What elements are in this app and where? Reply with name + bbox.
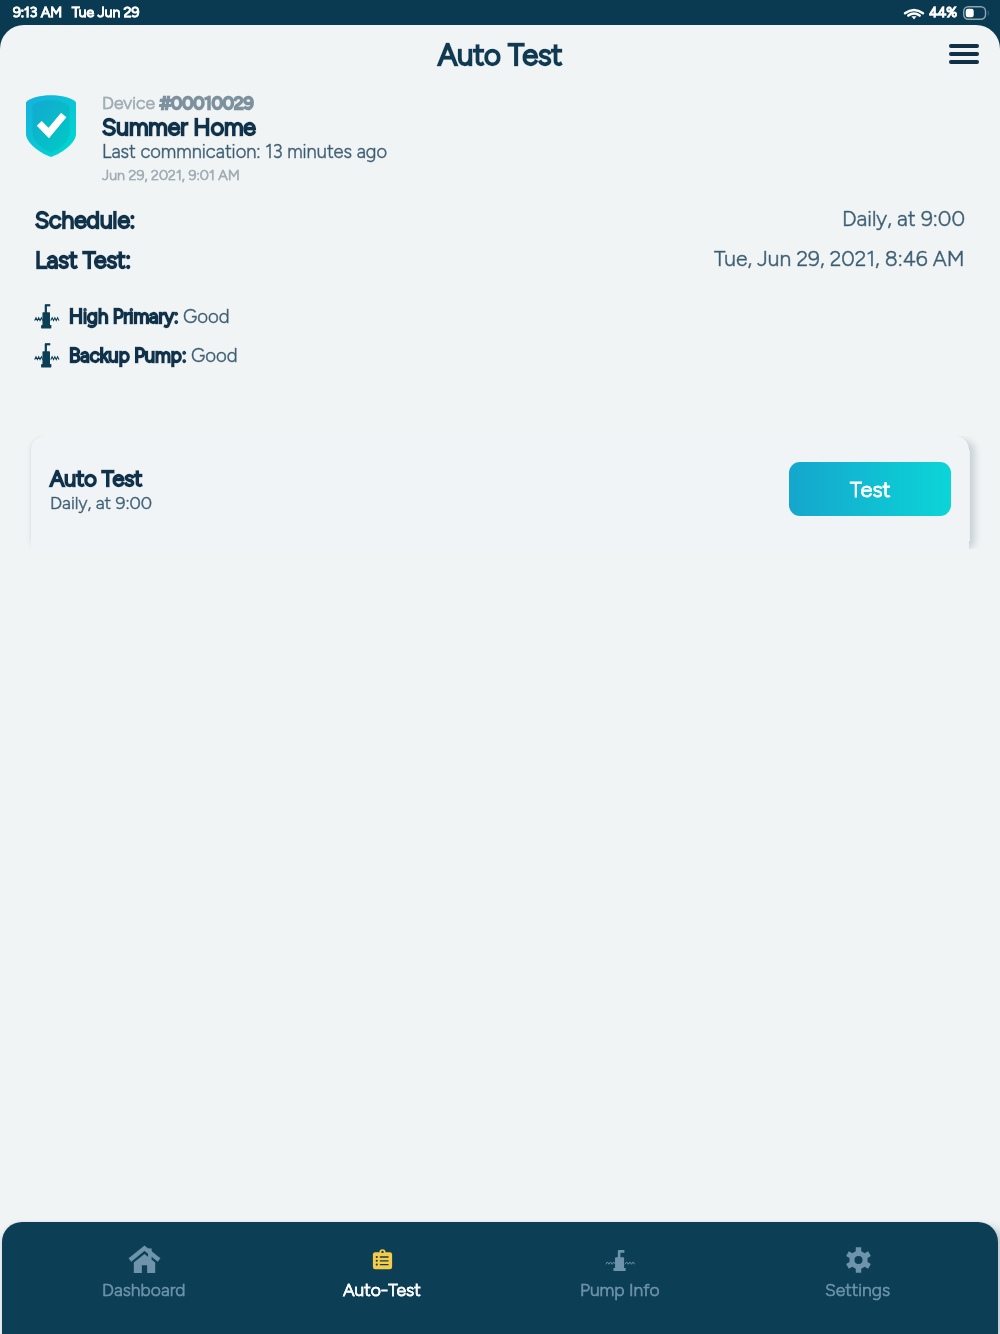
staticText: Daily, at 9:00: [50, 492, 153, 513]
staticText: Auto Test: [438, 37, 563, 72]
staticText: Test: [850, 476, 891, 502]
staticText: Schedule:: [35, 206, 136, 233]
staticText: Schedule:: [35, 206, 136, 233]
staticText: Summer Home: [102, 113, 256, 141]
staticText: Jun 29, 2021, 9:01 AM: [102, 166, 240, 183]
staticText: Tue, Jun 29, 2021, 8:46 AM: [714, 246, 965, 271]
staticText: Daily, at 9:00: [842, 206, 965, 232]
staticText: #00010029: [160, 92, 254, 113]
button[interactable]: Dashboard: [25, 1222, 263, 1300]
staticText: Settings: [825, 1279, 891, 1300]
staticText: 9:13 AM: [13, 4, 62, 21]
button[interactable]: Auto Test: [31, 436, 969, 549]
staticText: Auto Test: [50, 465, 143, 491]
staticText: :: [182, 344, 187, 366]
staticText: :: [182, 344, 187, 366]
staticText: Auto Test: [438, 37, 563, 72]
staticText: Last Test:: [35, 246, 131, 273]
staticText: Daily, at 9:00: [842, 206, 965, 232]
staticText: Last commnication: 13 minutes ago: [102, 141, 388, 163]
staticText: Auto Test: [50, 465, 143, 491]
staticText: Dashboard: [102, 1279, 186, 1300]
button[interactable]: Auto-Test: [263, 1222, 501, 1300]
staticText: High Primary: [69, 305, 174, 327]
staticText: Backup Pump: [69, 344, 182, 366]
staticText: Tue Jun 29: [72, 4, 140, 21]
staticText: Auto-Test: [343, 1279, 421, 1300]
staticText: Settings: [825, 1279, 891, 1300]
staticText: Good: [183, 305, 230, 327]
button[interactable]: Pump Info: [501, 1222, 739, 1300]
staticText: Daily, at 9:00: [50, 492, 153, 513]
staticText: 44%: [929, 4, 958, 21]
staticText: Good: [183, 305, 230, 327]
staticText: High Primary: [69, 305, 174, 327]
staticText: Good: [191, 344, 238, 366]
staticText: 9:13 AM: [13, 4, 62, 21]
staticText: Pump Info: [580, 1279, 660, 1300]
staticText: Tue, Jun 29, 2021, 8:46 AM: [714, 246, 965, 271]
staticText: Device: [102, 92, 160, 113]
staticText: Backup Pump: [69, 344, 182, 366]
staticText: Auto-Test: [343, 1279, 421, 1300]
staticText: Test: [850, 476, 891, 502]
staticText: :: [174, 305, 179, 327]
staticText: #00010029: [160, 92, 254, 113]
staticText: Tue Jun 29: [72, 4, 140, 21]
staticText: Dashboard: [102, 1279, 186, 1300]
staticText: :: [174, 305, 179, 327]
button[interactable]: Test: [789, 462, 951, 516]
button[interactable]: Settings: [739, 1222, 977, 1300]
staticText: Good: [191, 344, 238, 366]
staticText: Device: [102, 92, 160, 113]
staticText: 44%: [929, 4, 958, 21]
staticText: Summer Home: [102, 113, 256, 141]
staticText: Last commnication: 13 minutes ago: [102, 141, 388, 163]
button[interactable]: Menu: [940, 30, 988, 78]
staticText: Jun 29, 2021, 9:01 AM: [102, 166, 240, 183]
staticText: Pump Info: [580, 1279, 660, 1300]
staticText: Last Test:: [35, 246, 131, 273]
